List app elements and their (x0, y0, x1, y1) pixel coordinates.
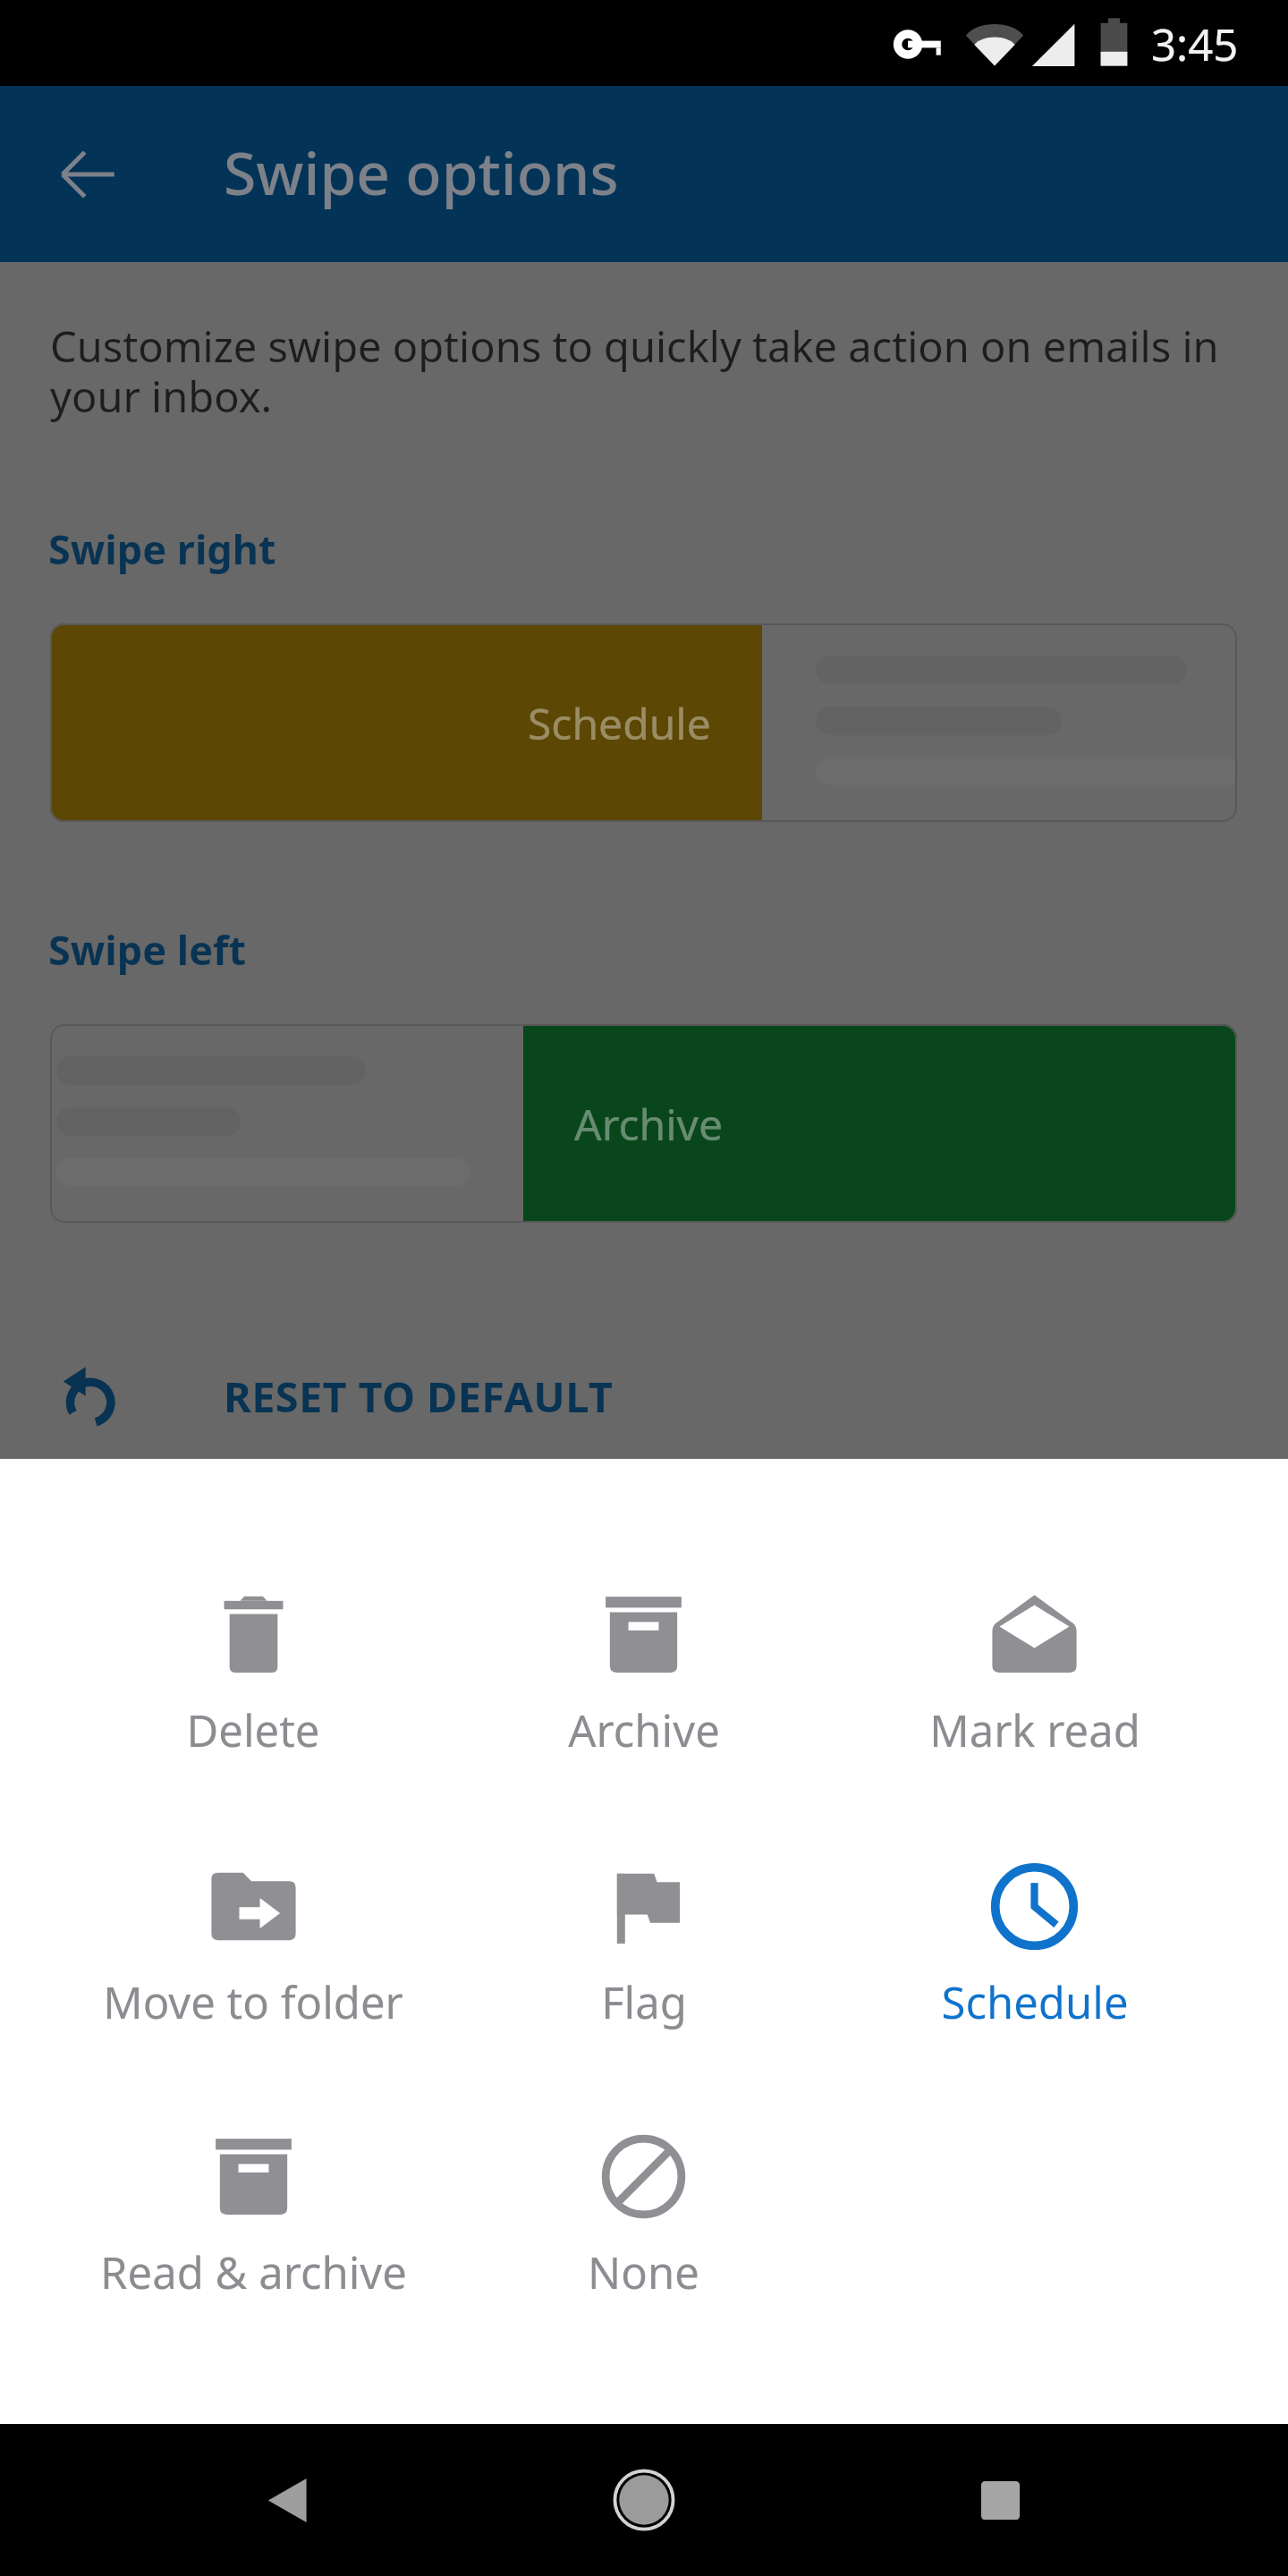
staticText: Delete (186, 1700, 320, 1760)
button[interactable]: Mark read (839, 1584, 1230, 1790)
button[interactable]: Read & archive (58, 2126, 448, 2332)
staticText: 3:45 (1151, 14, 1239, 74)
button[interactable]: Recent apps (946, 2446, 1054, 2554)
staticText: Move to folder (103, 1972, 403, 2032)
button[interactable]: RESET TO DEFAULT (22, 1328, 666, 1464)
staticText: Swipe left (48, 922, 246, 977)
button[interactable]: Flag (448, 1856, 839, 2062)
staticText: Archive (574, 1095, 724, 1153)
button[interactable]: Archive (448, 1584, 839, 1790)
staticText: None (588, 2242, 699, 2302)
button[interactable]: Archive (50, 1024, 1237, 1223)
button[interactable]: Home (590, 2446, 698, 2554)
staticText: Read & archive (100, 2242, 407, 2302)
staticText: Archive (568, 1700, 720, 1760)
button[interactable]: Back (233, 2446, 341, 2554)
staticText: Schedule (941, 1972, 1129, 2032)
staticText: Customize swipe options to quickly take … (50, 318, 1222, 425)
staticText: Swipe right (48, 521, 276, 576)
staticText: RESET TO DEFAULT (224, 1368, 614, 1425)
staticText: Flag (601, 1972, 687, 2032)
staticText: Mark read (929, 1700, 1140, 1760)
button[interactable]: None (448, 2126, 839, 2332)
button[interactable]: Navigate up (29, 115, 147, 233)
button[interactable]: Delete (58, 1584, 448, 1790)
button[interactable]: Schedule (50, 623, 1237, 822)
staticText: Swipe options (224, 131, 619, 212)
button[interactable]: Move to folder (58, 1856, 448, 2062)
button[interactable]: Schedule (839, 1856, 1230, 2062)
staticText: Schedule (528, 694, 711, 752)
